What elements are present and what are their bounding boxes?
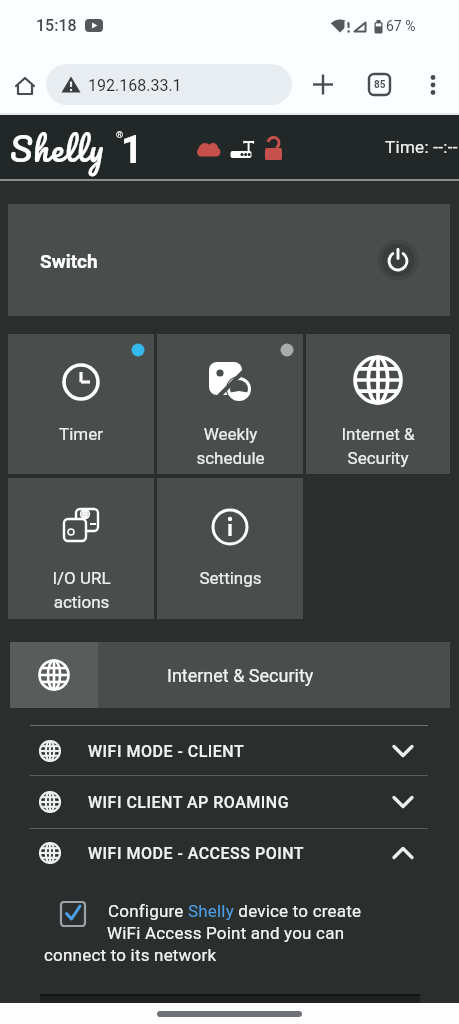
button[interactable]: WIFI MODE - CLIENT <box>0 727 459 775</box>
staticText: WiFi Access Point and you can <box>107 923 345 943</box>
staticText: 67 % <box>386 18 416 34</box>
staticText: ® <box>116 130 124 141</box>
staticText: Configure Shelly device to create <box>108 901 362 921</box>
staticText: Internet & Security <box>341 424 415 468</box>
staticText: 192.168.33.1 <box>88 76 182 95</box>
button[interactable]: WIFI CLIENT AP ROAMING <box>0 776 459 828</box>
staticText: Timer <box>59 424 103 444</box>
staticText: Time: --:-- <box>385 137 458 157</box>
staticText: Shelly <box>10 120 105 176</box>
staticText: 85 <box>374 79 386 91</box>
button[interactable] <box>157 334 303 474</box>
staticText: Switch <box>40 250 98 272</box>
button[interactable] <box>58 899 88 929</box>
button[interactable] <box>10 642 450 708</box>
button[interactable]: WIFI MODE - ACCESS POINT <box>0 829 459 877</box>
button[interactable] <box>8 334 154 474</box>
staticText: I/O URL actions <box>52 568 111 612</box>
staticText: WIFI MODE - CLIENT <box>88 742 245 761</box>
staticText: 1 <box>121 128 143 173</box>
button[interactable] <box>415 66 452 103</box>
staticText: Internet & Security <box>167 665 314 686</box>
staticText: WIFI CLIENT AP ROAMING <box>88 793 290 812</box>
staticText: WIFI MODE - ACCESS POINT <box>88 844 305 863</box>
button[interactable] <box>8 72 42 100</box>
button[interactable] <box>305 66 342 103</box>
staticText: 15:18 <box>36 16 77 35</box>
button[interactable] <box>157 478 303 619</box>
staticText: Weekly schedule <box>196 424 265 468</box>
button[interactable]: 85 <box>369 74 390 95</box>
button[interactable] <box>46 64 292 105</box>
staticText: Settings <box>199 568 262 588</box>
button[interactable] <box>306 334 450 474</box>
staticText: connect to its network <box>44 945 217 965</box>
button[interactable] <box>376 238 420 282</box>
button[interactable] <box>8 478 154 619</box>
